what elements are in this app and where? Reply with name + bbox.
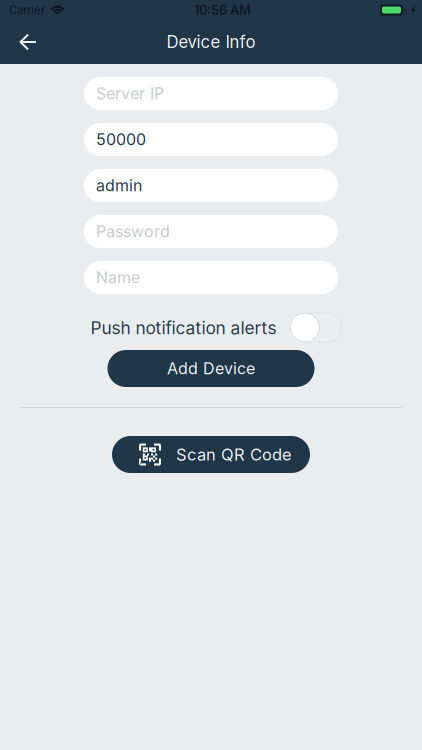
staticText: admin — [96, 176, 142, 195]
staticText: Scan QR Code — [176, 444, 292, 464]
button[interactable]: Add Device — [107, 350, 314, 387]
staticText: Push notification alerts — [90, 317, 276, 338]
staticText: Password — [96, 222, 170, 241]
staticText: Device Info — [166, 32, 255, 52]
staticText: Name — [96, 268, 140, 287]
staticText: 10:56 AM — [194, 2, 251, 18]
staticText: 50000 — [96, 130, 146, 149]
staticText: Server IP — [96, 84, 164, 103]
staticText: Carrier — [9, 3, 45, 17]
button[interactable]: Push notification alerts — [290, 311, 341, 342]
staticText: Add Device — [167, 359, 255, 378]
button[interactable]: Scan QR Code — [112, 436, 310, 473]
button[interactable]: Back — [0, 20, 64, 64]
